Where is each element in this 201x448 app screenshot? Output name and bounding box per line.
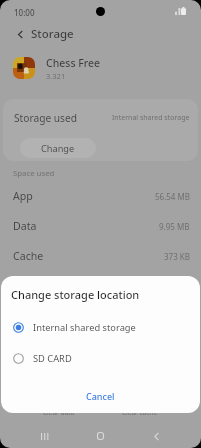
staticText: App (13, 189, 33, 203)
button[interactable]: Cache (0, 242, 201, 270)
button[interactable]: Recent apps (23, 424, 67, 448)
button[interactable]: Home (78, 424, 122, 448)
staticText: Clear data (43, 408, 75, 416)
button[interactable]: Internal shared storage (1, 315, 200, 339)
button[interactable]: Clear data (39, 404, 79, 420)
staticText: 3.321 (46, 71, 66, 81)
button[interactable]: SD CARD (1, 346, 200, 370)
staticText: Storage used (14, 111, 77, 125)
button[interactable]: Cancel (72, 386, 129, 406)
staticText: Internal shared storage (33, 321, 136, 334)
staticText: Cache (13, 249, 44, 263)
staticText: 56.54 MB (155, 191, 190, 202)
staticText: 10:00 (14, 7, 35, 18)
button[interactable]: Chess Free (0, 48, 201, 88)
button[interactable]: Back (134, 424, 178, 448)
staticText: Chess Free (46, 56, 101, 70)
button[interactable]: Clear cache (118, 404, 162, 420)
staticText: 373 KB (164, 251, 190, 262)
staticText: SD CARD (33, 352, 72, 365)
staticText: Change (41, 142, 75, 155)
staticText: Storage (31, 26, 74, 42)
staticText: Cancel (86, 390, 115, 402)
staticText: Internal shared storage (112, 113, 190, 123)
button[interactable]: App (0, 182, 201, 210)
button[interactable]: Change (20, 138, 96, 158)
staticText: Data (13, 219, 37, 233)
staticText: 9.95 MB (159, 221, 190, 232)
button[interactable]: Back (11, 25, 29, 43)
staticText: Space used (13, 168, 55, 179)
button[interactable]: Data (0, 212, 201, 240)
staticText: Clear cache (122, 408, 158, 416)
staticText: Change storage location (11, 287, 140, 302)
